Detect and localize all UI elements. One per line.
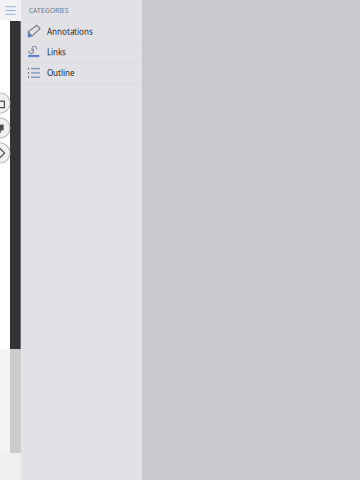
staticText: Annotations <box>47 26 93 37</box>
button[interactable]: Outline <box>21 63 142 83</box>
button[interactable]: Links <box>21 42 142 62</box>
button[interactable]: Menu <box>0 0 21 20</box>
button[interactable]: Annotations <box>21 22 142 42</box>
staticText: Links <box>47 47 66 57</box>
button[interactable]: Bookmark <box>0 93 10 113</box>
staticText: CATEGORIES <box>29 6 69 15</box>
button[interactable]: Search <box>0 143 10 163</box>
button[interactable]: Share <box>0 118 10 138</box>
staticText: Outline <box>47 67 75 78</box>
